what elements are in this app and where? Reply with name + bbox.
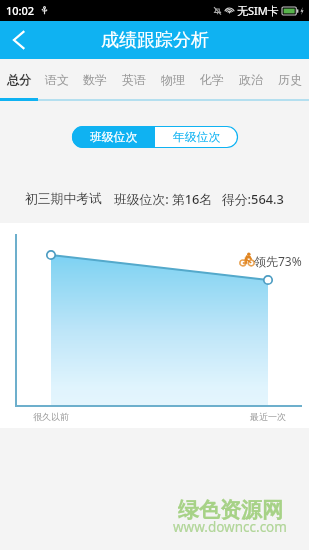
staticText: 绿色资源网 (178, 497, 283, 523)
staticText: 得分:564.3 (222, 190, 284, 207)
button[interactable]: 政治 (231, 59, 270, 100)
staticText: 10:02 (6, 3, 35, 18)
staticText: 化学 (200, 72, 224, 87)
staticText: 最近一次 (250, 411, 286, 422)
staticText: 班级位次: 第16名 (114, 190, 213, 207)
button[interactable]: Back (0, 21, 38, 59)
staticText: 政治 (239, 72, 263, 87)
button[interactable]: 总分 (0, 59, 38, 100)
staticText: 英语 (122, 72, 146, 87)
staticText: 物理 (161, 72, 185, 87)
button[interactable]: 物理 (153, 59, 192, 100)
staticText: 初三期中考试 (25, 191, 102, 207)
staticText: 语文 (45, 72, 69, 87)
button[interactable]: 历史 (270, 59, 309, 100)
button[interactable]: 年级位次 (155, 126, 238, 148)
staticText: 班级位次 (90, 130, 138, 145)
staticText: 成绩跟踪分析 (101, 29, 209, 52)
button[interactable]: 数学 (76, 59, 114, 100)
staticText: www.downcc.com (173, 518, 287, 536)
button[interactable]: 化学 (192, 59, 231, 100)
button[interactable]: 英语 (114, 59, 153, 100)
button[interactable]: 班级位次 (72, 126, 155, 148)
staticText: 年级位次 (173, 130, 221, 145)
staticText: 无SIM卡 (237, 3, 279, 18)
staticText: 总分 (7, 72, 31, 87)
staticText: 数学 (83, 72, 107, 87)
staticText: 历史 (278, 72, 302, 87)
staticText: 很久以前 (33, 411, 69, 422)
staticText: 领先73% (254, 253, 302, 269)
button[interactable]: 语文 (38, 59, 76, 100)
